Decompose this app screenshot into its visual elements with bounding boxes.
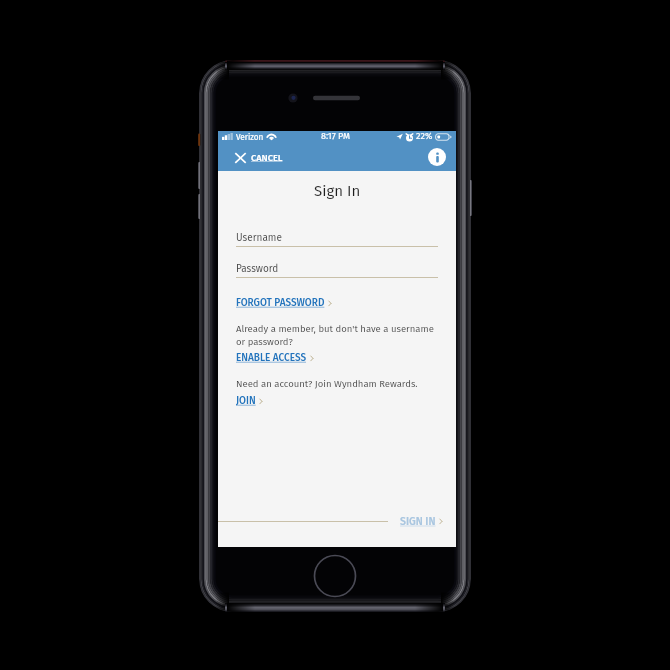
staticText: Need an account? Join Wyndham Rewards. — [236, 378, 418, 389]
staticText: 8:17 PM — [321, 131, 350, 142]
staticText: Verizon — [236, 132, 264, 142]
staticText: ENABLE ACCESS — [236, 352, 307, 364]
button[interactable]: ENABLE ACCESS — [236, 352, 314, 364]
button[interactable]: Password — [236, 263, 438, 278]
staticText: Password — [236, 263, 279, 275]
staticText: Username — [236, 232, 282, 244]
button[interactable]: JOIN — [236, 395, 263, 407]
staticText: Sign In — [314, 182, 361, 200]
staticText: Already a member, but don't have a usern… — [236, 323, 434, 334]
staticText: or password? — [236, 336, 293, 347]
button[interactable]: Information — [428, 148, 446, 166]
staticText: 22% — [416, 131, 433, 142]
staticText: CANCEL — [251, 152, 283, 163]
staticText: SIGN IN — [400, 515, 436, 528]
button[interactable]: FORGOT PASSWORD — [236, 297, 332, 309]
button[interactable]: Username — [236, 232, 438, 247]
staticText: JOIN — [236, 395, 256, 407]
button[interactable]: CANCEL — [218, 150, 289, 169]
staticText: FORGOT PASSWORD — [236, 297, 325, 309]
button[interactable]: SIGN IN — [396, 510, 447, 533]
